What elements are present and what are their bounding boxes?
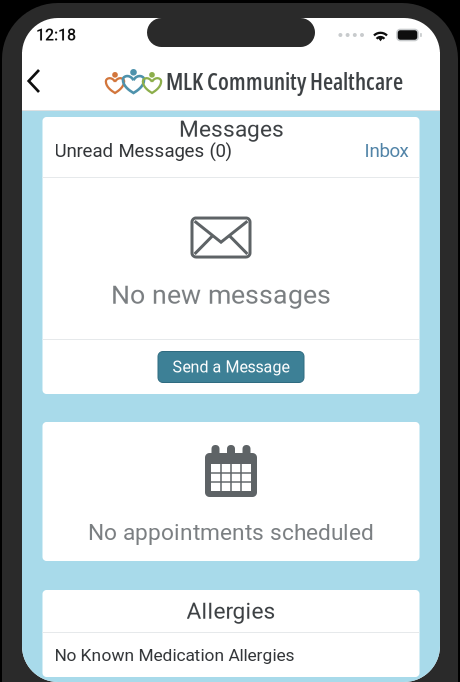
staticText: 12:18 bbox=[36, 26, 76, 44]
staticText: MLK Community Healthcare bbox=[166, 65, 403, 97]
button[interactable]: Send a Message bbox=[158, 351, 304, 382]
staticText: No new messages bbox=[111, 279, 331, 310]
staticText: Messages bbox=[179, 116, 284, 142]
button[interactable]: Inbox bbox=[364, 140, 408, 161]
staticText: No appointments scheduled bbox=[88, 519, 374, 546]
staticText: No Known Medication Allergies bbox=[54, 645, 294, 665]
button[interactable]: Back bbox=[12, 56, 56, 106]
staticText: Inbox bbox=[364, 140, 408, 161]
staticText: Unread Messages (0) bbox=[54, 140, 231, 161]
staticText: Send a Message bbox=[172, 358, 289, 376]
staticText: Allergies bbox=[186, 598, 275, 624]
